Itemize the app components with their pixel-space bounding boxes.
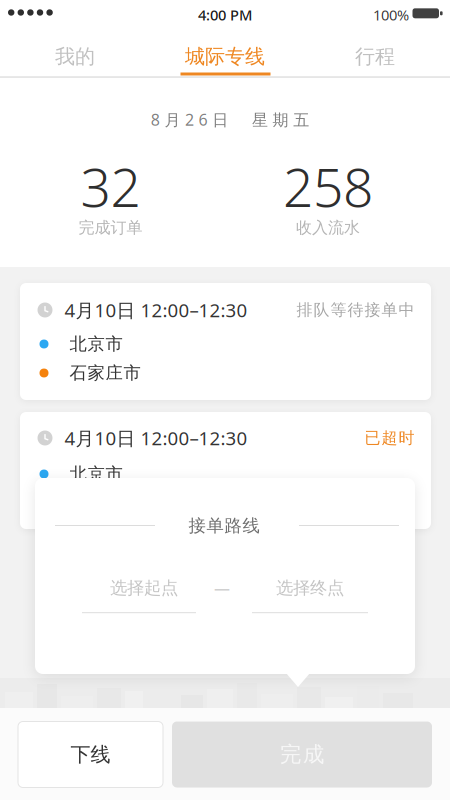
staticText: 北 京 市 [69, 463, 122, 485]
staticText: 选择终点 [276, 577, 344, 599]
button[interactable]: 行程 [300, 30, 450, 77]
button[interactable]: 城际专线 [150, 30, 300, 77]
button[interactable]: 4月10日 12:00–12:30 [20, 412, 431, 529]
staticText: 完成订单 [78, 218, 142, 237]
staticText: 下线 [70, 742, 110, 767]
staticText: 排 队 等 待 接 单 中 [296, 300, 414, 320]
staticText: 8月26日 星期五 [151, 109, 309, 130]
staticText: — [214, 577, 230, 599]
button[interactable]: 下线 [18, 721, 163, 787]
staticText: 行程 [355, 44, 395, 69]
button[interactable]: 选择起点 [87, 576, 201, 600]
staticText: 接单路线 [188, 515, 259, 536]
staticText: 32 [80, 151, 140, 222]
staticText: 4月10日 12:00–12:30 [64, 298, 247, 322]
button[interactable]: 我的 [0, 30, 150, 77]
staticText: 城际专线 [185, 44, 265, 69]
staticText: 100% [373, 5, 409, 24]
staticText: 选择起点 [110, 577, 178, 599]
staticText: 4月10日 12:00–12:30 [64, 426, 247, 450]
staticText: 4:00 PM [198, 5, 252, 24]
staticText: 石 家 庄 市 [69, 362, 140, 384]
button[interactable]: 选择终点 [252, 576, 368, 600]
staticText: 258 [283, 151, 373, 222]
staticText: 已 超 时 [364, 428, 414, 448]
staticText: 完成 [280, 741, 324, 768]
staticText: 北 京 市 [69, 333, 122, 355]
staticText: 我的 [55, 44, 95, 69]
button[interactable]: 4月10日 12:00–12:30 [20, 283, 431, 400]
staticText: 收入流水 [296, 218, 360, 237]
